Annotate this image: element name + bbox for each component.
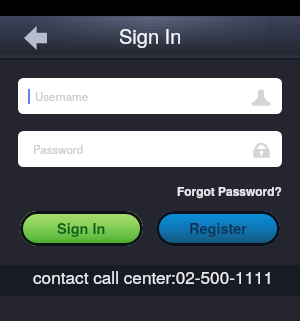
staticText: Register bbox=[189, 218, 247, 239]
button[interactable]: Forgot Password? bbox=[177, 180, 282, 197]
button[interactable]: Password bbox=[18, 131, 282, 167]
staticText: contact call center:02-500-1111 bbox=[33, 264, 274, 289]
staticText: Username bbox=[35, 88, 89, 104]
staticText: Sign In bbox=[119, 21, 182, 50]
staticText: Password bbox=[33, 141, 84, 157]
button[interactable]: Username bbox=[18, 78, 282, 114]
staticText: Sign In bbox=[57, 218, 106, 239]
button[interactable]: Back bbox=[19, 22, 51, 54]
button[interactable]: Sign In bbox=[20, 211, 143, 246]
button[interactable]: Register bbox=[156, 211, 280, 246]
